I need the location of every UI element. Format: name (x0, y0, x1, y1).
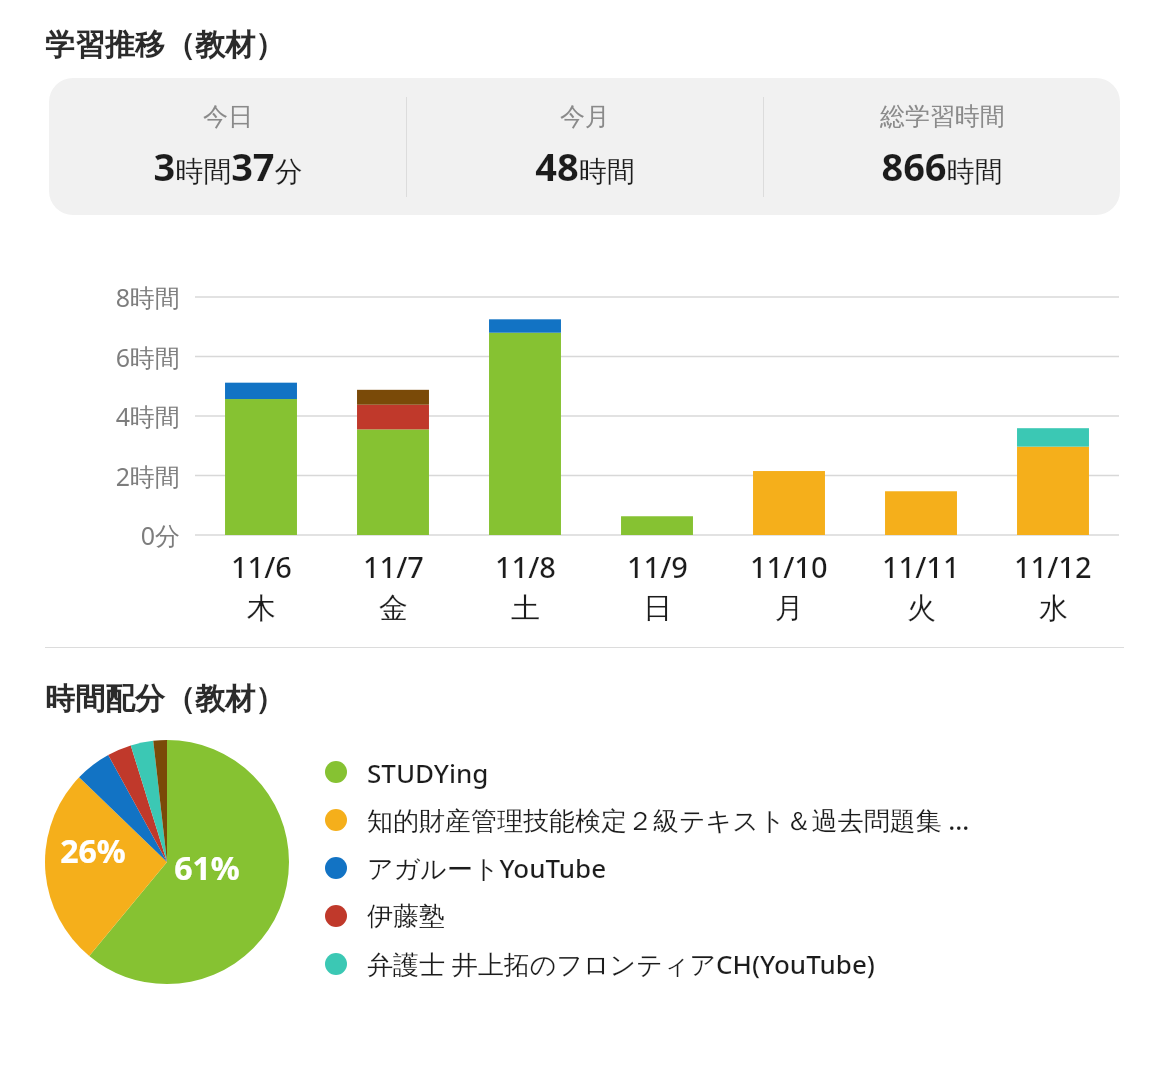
button[interactable]: 学習時間配分の円グラフ (45, 740, 289, 984)
staticText: 今日 (203, 101, 253, 132)
staticText: 火 (907, 590, 936, 627)
button[interactable]: 伊藤塾 (325, 892, 1169, 940)
button[interactable]: 総学習時間 (764, 101, 1120, 192)
button[interactable]: 今月 (407, 101, 763, 192)
staticText: 弁護士 井上拓のフロンティアCH(YouTube) (367, 946, 875, 982)
staticText: 11/10 (750, 547, 828, 586)
staticText: 26% (53, 829, 133, 873)
button[interactable]: アガルートYouTube (325, 844, 1169, 892)
button[interactable]: STUDYing (325, 748, 1169, 796)
staticText: 伊藤塾 (367, 900, 445, 933)
staticText: 日 (643, 590, 672, 627)
staticText: 水 (1039, 590, 1068, 627)
staticText: 11/6 (231, 547, 292, 586)
staticText: 4時間 (40, 399, 180, 433)
staticText: STUDYing (367, 755, 489, 790)
staticText: 2時間 (40, 459, 180, 493)
button[interactable]: 今日 (49, 101, 406, 192)
staticText: 時間配分（教材） (45, 680, 285, 718)
staticText: 木 (247, 590, 276, 627)
staticText: 土 (511, 590, 540, 627)
staticText: 知的財産管理技能検定２級テキスト＆過去問題集 … (367, 802, 970, 838)
button[interactable]: 8時間 (0, 275, 1169, 605)
staticText: 11/11 (882, 547, 960, 586)
staticText: アガルートYouTube (367, 850, 607, 886)
staticText: 総学習時間 (880, 101, 1005, 132)
staticText: 11/7 (363, 547, 424, 586)
staticText: 6時間 (40, 340, 180, 374)
button[interactable]: 弁護士 井上拓のフロンティアCH(YouTube) (325, 940, 1169, 988)
staticText: 48時間 (535, 140, 635, 192)
staticText: 3時間37分 (153, 140, 303, 192)
staticText: 金 (379, 590, 408, 627)
staticText: 0分 (40, 518, 180, 552)
staticText: 11/9 (627, 547, 688, 586)
staticText: 11/12 (1014, 547, 1092, 586)
staticText: 61% (167, 846, 247, 890)
staticText: 学習推移（教材） (45, 26, 285, 64)
staticText: 8時間 (40, 280, 180, 314)
staticText: 月 (775, 590, 804, 627)
staticText: 866時間 (881, 140, 1003, 192)
button[interactable]: 今日 (49, 78, 1120, 215)
staticText: 11/8 (495, 547, 556, 586)
staticText: 今月 (560, 101, 610, 132)
button[interactable]: 知的財産管理技能検定２級テキスト＆過去問題集 … (325, 796, 1169, 844)
